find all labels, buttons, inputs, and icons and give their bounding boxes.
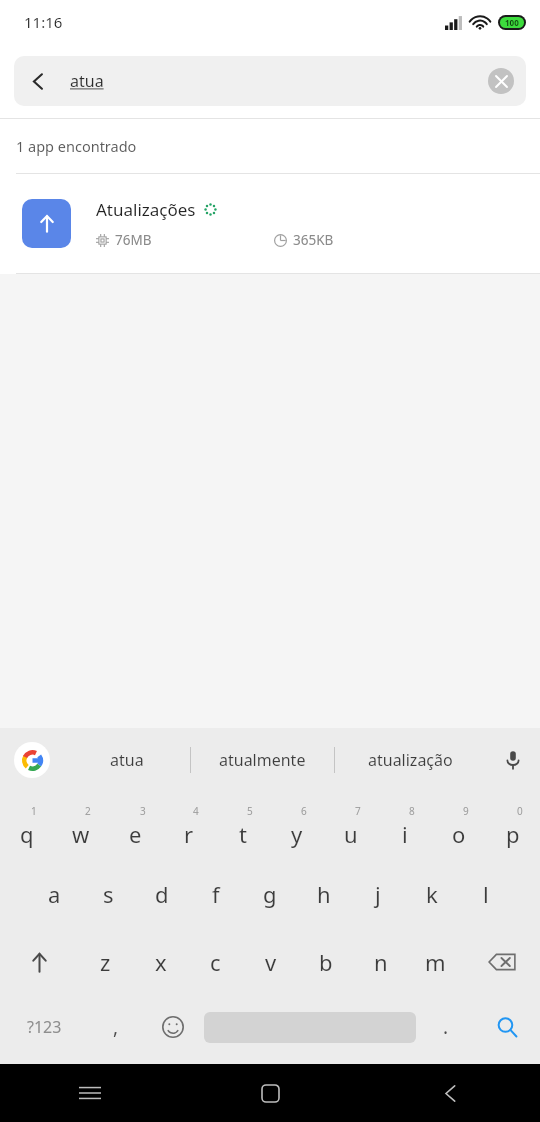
staticText: p [506,819,520,849]
staticText: o [452,819,466,849]
staticText: 7 [355,804,361,818]
staticText: 0 [517,804,523,818]
staticText: i [402,819,408,849]
staticText: atualmente [219,749,306,771]
button[interactable]: s [81,860,135,928]
button[interactable]: z [78,928,133,996]
button[interactable]: f [189,860,243,928]
staticText: 5 [247,804,253,818]
staticText: q [20,819,34,849]
button[interactable]: Clear text [488,68,514,94]
button[interactable]: Search [474,996,540,1058]
staticText: w [72,819,90,849]
button[interactable]: Backspace [463,928,540,996]
button[interactable]: Emoji [144,996,202,1058]
button[interactable]: 2 [54,792,108,860]
button[interactable]: atualização [335,728,486,792]
staticText: 4 [193,804,199,818]
staticText: c [210,947,221,977]
staticText: j [375,879,381,909]
staticText: Atualizações [96,198,196,221]
button[interactable]: 4 [162,792,216,860]
staticText: atua [110,749,144,771]
staticText: v [265,947,277,977]
staticText: f [212,879,220,909]
button[interactable]: m [408,928,463,996]
staticText: l [483,879,489,909]
staticText: 1 app encontrado [16,136,137,156]
button[interactable]: g [243,860,297,928]
button[interactable]: 0 [486,792,540,860]
staticText: m [425,947,446,977]
button[interactable]: Shift [0,928,78,996]
button[interactable]: . [418,996,474,1058]
staticText: e [129,819,142,849]
staticText: 2 [85,804,91,818]
button[interactable]: ?123 [0,996,88,1058]
button[interactable]: a [27,860,81,928]
staticText: t [239,819,247,849]
button[interactable]: d [135,860,189,928]
button[interactable]: 6 [270,792,324,860]
button[interactable]: 3 [108,792,162,860]
button[interactable]: atua [64,728,190,792]
button[interactable]: Google [0,728,64,792]
staticText: b [319,947,333,977]
staticText: 76MB [115,231,152,249]
staticText: 1 [31,804,37,818]
button[interactable]: Recent apps [0,1064,180,1122]
button[interactable]: x [133,928,188,996]
staticText: atua [70,70,104,92]
staticText: 365KB [293,231,334,249]
staticText: h [317,879,331,909]
button[interactable]: Home [180,1064,360,1122]
button[interactable]: c [188,928,243,996]
staticText: 11:16 [24,12,63,32]
button[interactable]: v [243,928,298,996]
button[interactable]: 8 [378,792,432,860]
staticText: r [184,819,194,849]
staticText: x [155,947,167,977]
staticText: 6 [301,804,307,818]
staticText: s [103,879,114,909]
button[interactable]: k [405,860,459,928]
button[interactable]: 9 [432,792,486,860]
button[interactable]: , [88,996,144,1058]
button[interactable]: 1 [0,792,54,860]
staticText: atualização [368,749,453,771]
button[interactable]: Back [14,57,62,105]
button[interactable]: Voice input [486,728,540,792]
button[interactable]: Space [204,996,416,1058]
staticText: 100 [505,17,519,28]
staticText: k [426,879,438,909]
staticText: , [113,1014,119,1040]
button[interactable]: n [353,928,408,996]
staticText: 8 [409,804,415,818]
button[interactable]: Back [360,1064,540,1122]
staticText: 9 [463,804,469,818]
staticText: ?123 [27,1016,62,1038]
button[interactable]: 5 [216,792,270,860]
button[interactable]: 7 [324,792,378,860]
staticText: d [155,879,169,909]
button[interactable]: l [459,860,513,928]
staticText: z [100,947,111,977]
button[interactable]: Atualizações [0,174,540,273]
button[interactable]: b [298,928,353,996]
staticText: y [291,819,303,849]
staticText: a [48,879,61,909]
staticText: g [263,879,277,909]
button[interactable]: j [351,860,405,928]
staticText: u [344,819,358,849]
button[interactable]: atualmente [191,728,334,792]
staticText: n [374,947,388,977]
button[interactable]: h [297,860,351,928]
staticText: 3 [140,804,146,818]
staticText: . [443,1014,449,1040]
